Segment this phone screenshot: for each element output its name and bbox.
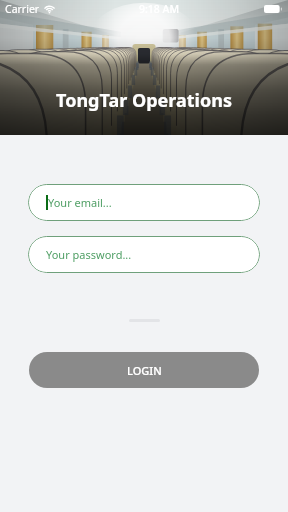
button[interactable]: LOGIN	[29, 352, 259, 388]
staticText: Your email...	[48, 195, 112, 210]
staticText: 9:18 AM	[139, 2, 180, 16]
other: Battery	[264, 5, 282, 13]
other: Wifi	[44, 5, 55, 13]
staticText: TongTar Operations	[56, 88, 232, 113]
button[interactable]: Your email...	[28, 184, 260, 221]
staticText: LOGIN	[127, 363, 162, 378]
button[interactable]: Your password...	[28, 236, 260, 273]
staticText: Your password...	[46, 247, 132, 262]
staticText: Carrier	[5, 2, 40, 16]
